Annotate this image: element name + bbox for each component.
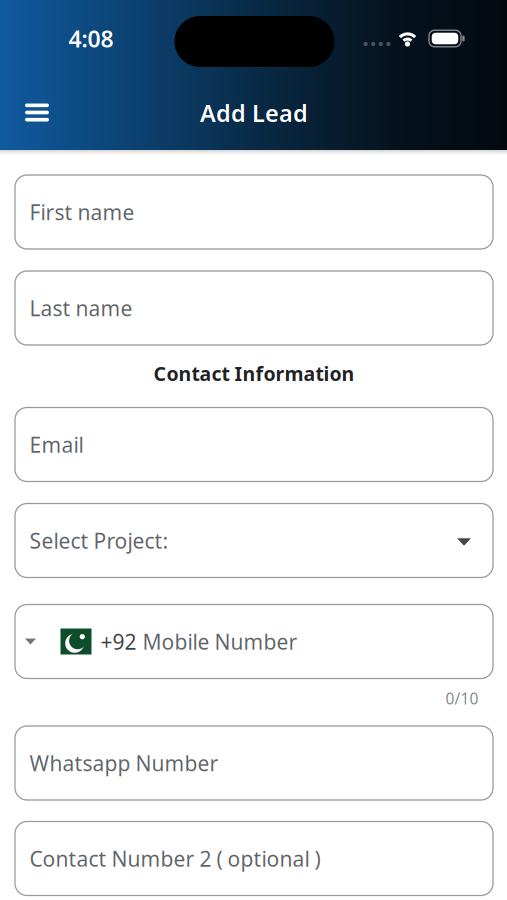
staticText: First name — [29, 198, 134, 226]
button[interactable]: First name — [15, 175, 493, 249]
staticText: Email — [29, 430, 83, 459]
button[interactable]: Whatsapp Number — [15, 726, 493, 800]
button[interactable]: Email — [15, 407, 493, 481]
button[interactable]: Select Project: — [15, 503, 493, 577]
staticText: 4:08 — [68, 23, 113, 54]
staticText: Contact Information — [153, 360, 354, 387]
staticText: Mobile Number — [142, 627, 297, 656]
staticText: Select Project: — [29, 526, 168, 555]
button[interactable]: Menu — [15, 90, 59, 134]
button[interactable]: Last name — [15, 271, 493, 345]
staticText: Add Lead — [200, 97, 308, 129]
staticText: 0/10 — [445, 688, 478, 709]
button[interactable]: +92 — [15, 604, 493, 678]
staticText: Contact Number 2 ( optional ) — [29, 844, 320, 873]
staticText: +92 — [100, 627, 136, 656]
staticText: Last name — [29, 294, 132, 322]
staticText: Whatsapp Number — [29, 749, 218, 777]
button[interactable]: Contact Number 2 ( optional ) — [15, 821, 493, 895]
